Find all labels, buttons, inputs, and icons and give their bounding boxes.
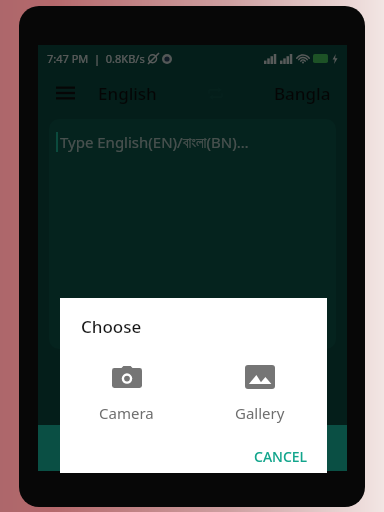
- staticText: English: [98, 82, 157, 105]
- staticText: Type English(EN)/বাংলা(BN)…: [60, 132, 249, 152]
- button[interactable]: Type English(EN)/বাংলা(BN)…: [49, 119, 336, 349]
- button[interactable]: Camera: [60, 359, 193, 427]
- button[interactable]: CANCEL: [248, 442, 314, 471]
- staticText: Bangla: [274, 82, 331, 105]
- staticText: Camera: [99, 403, 154, 423]
- other: Camera: [112, 363, 142, 393]
- button[interactable]: Menu: [50, 78, 80, 108]
- other: Gallery: [245, 363, 275, 393]
- button[interactable]: Bangla: [270, 78, 335, 109]
- staticText: 7:47 PM | 0.8KB/s: [47, 51, 145, 66]
- button[interactable]: Gallery: [193, 359, 327, 427]
- staticText: Gallery: [235, 403, 285, 423]
- staticText: CANCEL: [254, 447, 308, 466]
- staticText: Choose: [81, 315, 142, 338]
- button[interactable]: English: [94, 78, 161, 109]
